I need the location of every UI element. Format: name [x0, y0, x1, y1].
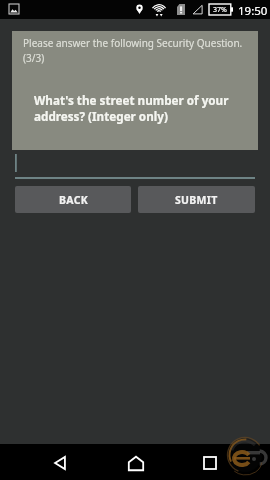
staticText: Please answer the following Security Que…	[23, 36, 245, 65]
button[interactable]: Answer input field	[15, 152, 255, 180]
staticText: What's the street number of your address…	[34, 92, 234, 124]
button[interactable]: Back	[44, 447, 76, 479]
button[interactable]: Home	[120, 447, 152, 479]
staticText: 37%	[213, 5, 227, 15]
button[interactable]: SUBMIT	[138, 186, 255, 213]
button[interactable]: Recent apps	[194, 447, 226, 479]
staticText: 19:50	[238, 3, 268, 19]
staticText: BACK	[59, 193, 88, 207]
button[interactable]: BACK	[15, 186, 131, 213]
staticText: SUBMIT	[175, 193, 218, 207]
